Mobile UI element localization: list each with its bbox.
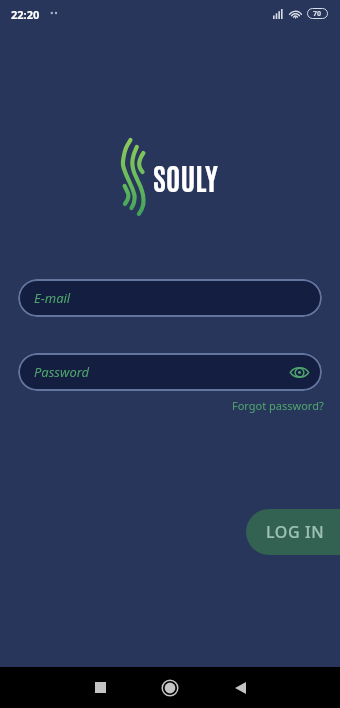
button[interactable]: Recent apps bbox=[78, 667, 122, 708]
button[interactable]: LOG IN bbox=[246, 509, 340, 555]
staticText: Password bbox=[34, 363, 90, 381]
button[interactable]: Back bbox=[218, 667, 262, 708]
button[interactable]: Forgot password? bbox=[232, 398, 324, 413]
staticText: E-mail bbox=[34, 289, 71, 307]
staticText: Forgot password? bbox=[232, 398, 324, 413]
button[interactable]: Show password bbox=[287, 360, 311, 384]
staticText: SOULY bbox=[153, 157, 218, 196]
staticText: 70 bbox=[313, 9, 322, 19]
button[interactable]: Password bbox=[18, 353, 322, 391]
button[interactable]: Home bbox=[148, 667, 192, 708]
staticText: 22:20 bbox=[11, 7, 40, 22]
staticText: LOG IN bbox=[266, 521, 325, 543]
button[interactable]: E-mail bbox=[18, 279, 322, 317]
